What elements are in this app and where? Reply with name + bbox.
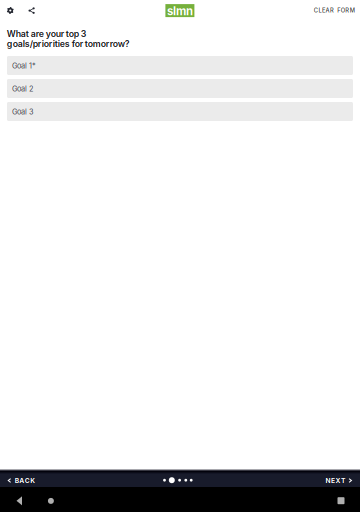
staticText: Goal 1* xyxy=(12,61,36,70)
staticText: Goal 2 xyxy=(12,84,33,93)
button[interactable]: BACK xyxy=(7,471,41,490)
staticText: BACK xyxy=(15,476,35,485)
button[interactable]: Goal 3 xyxy=(7,102,353,121)
button[interactable]: Goal 1* xyxy=(7,56,353,75)
button[interactable]: Settings xyxy=(2,2,18,18)
staticText: goals/priorities for tomorrow? xyxy=(7,38,130,49)
button[interactable]: CLEAR FORM xyxy=(299,0,355,20)
staticText: NEXT xyxy=(325,476,345,485)
button[interactable]: Goal 2 xyxy=(7,79,353,98)
staticText: What are your top 3 xyxy=(7,29,87,39)
staticText: Goal 3 xyxy=(12,107,34,116)
staticText: slmn xyxy=(167,4,193,18)
button[interactable]: NEXT xyxy=(318,471,352,490)
button[interactable]: Share xyxy=(24,3,40,19)
staticText: CLEAR FORM xyxy=(314,7,355,14)
